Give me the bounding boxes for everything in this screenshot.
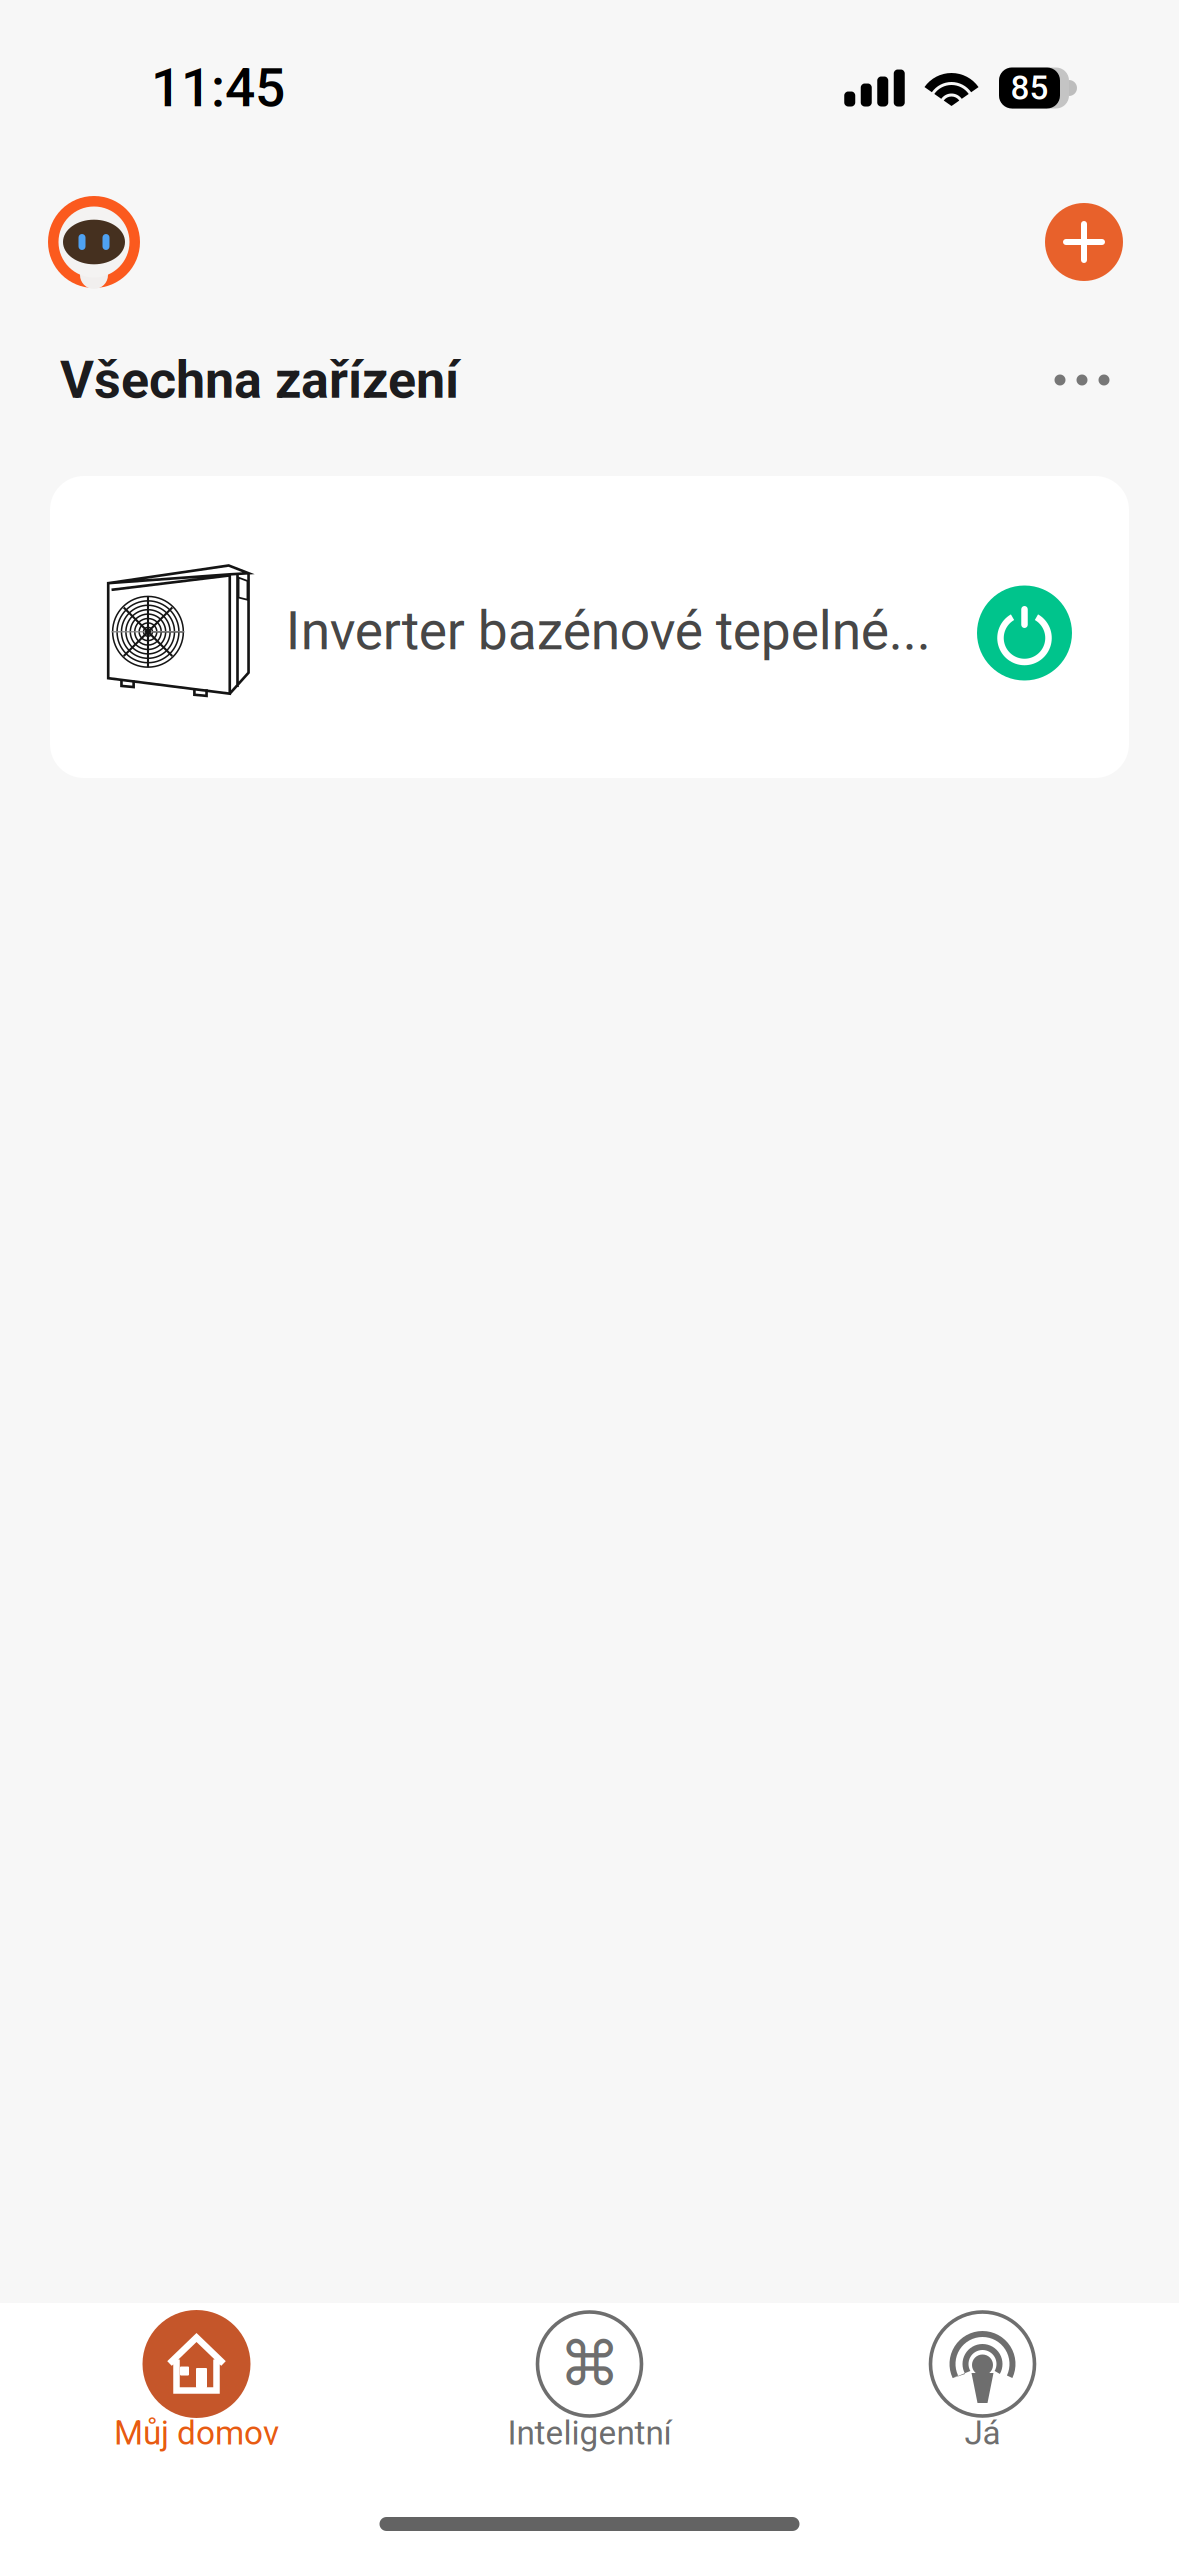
button[interactable]: Já xyxy=(786,2310,1179,2476)
button[interactable]: Inverter bazénové tepelné... xyxy=(50,476,1129,778)
button[interactable]: Profile xyxy=(48,196,140,288)
button[interactable]: Můj domov xyxy=(0,2310,393,2476)
staticText: 85 xyxy=(1010,68,1048,108)
button[interactable]: Add device xyxy=(1045,203,1123,281)
staticText: Můj domov xyxy=(114,2413,279,2453)
staticText: ⌘ xyxy=(559,2328,620,2400)
button[interactable]: More options xyxy=(1032,350,1132,410)
staticText: 11:45 xyxy=(151,57,285,119)
staticText: Všechna zařízení xyxy=(60,349,459,410)
button[interactable]: ⌘ xyxy=(393,2310,786,2476)
staticText: Já xyxy=(964,2413,1000,2453)
staticText: Inverter bazénové tepelné... xyxy=(286,600,931,662)
staticText: Inteligentní xyxy=(507,2413,671,2453)
